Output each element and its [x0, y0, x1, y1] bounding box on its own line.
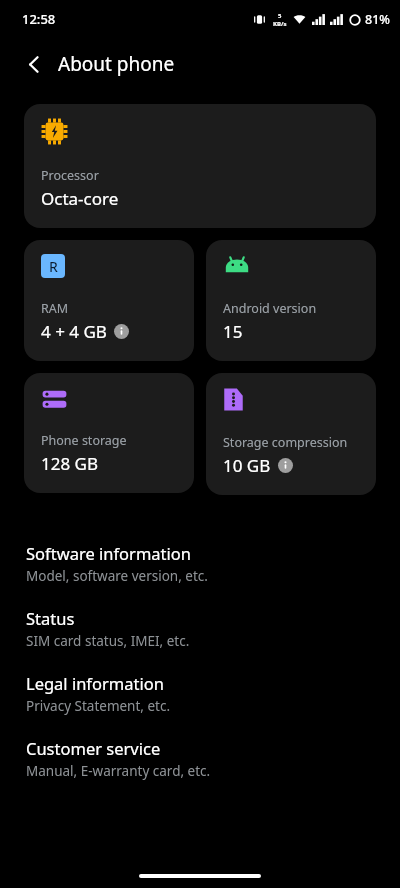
staticText: Octa-core — [41, 187, 119, 210]
staticText: 128 GB — [41, 452, 99, 475]
staticText: Manual, E-warranty card, etc. — [26, 762, 211, 780]
staticText: R — [49, 257, 58, 276]
staticText: 81% — [365, 11, 390, 28]
staticText: RAM — [41, 300, 69, 317]
staticText: About phone — [58, 51, 175, 77]
staticText: 5 — [278, 12, 282, 20]
staticText: Software information — [26, 542, 191, 564]
staticText: 4 + 4 GB — [41, 320, 107, 343]
button[interactable]: Phone storage — [24, 373, 194, 493]
button[interactable]: Status — [0, 596, 400, 661]
button[interactable]: Customer service — [0, 726, 400, 791]
staticText: KB/s — [273, 20, 287, 28]
staticText: Processor — [41, 167, 99, 184]
staticText: Customer service — [26, 737, 161, 759]
button[interactable]: R — [24, 240, 194, 361]
button[interactable]: Processor — [24, 104, 376, 228]
staticText: 12:58 — [22, 10, 56, 28]
button[interactable]: Android version — [206, 240, 376, 361]
staticText: Phone storage — [41, 432, 127, 449]
button[interactable]: Storage compression — [206, 373, 376, 495]
button[interactable]: Legal information — [0, 661, 400, 726]
button[interactable]: Back — [14, 44, 54, 84]
staticText: Privacy Statement, etc. — [26, 697, 171, 715]
staticText: SIM card status, IMEI, etc. — [26, 632, 190, 650]
staticText: 15 — [223, 320, 243, 343]
staticText: Legal information — [26, 672, 164, 694]
staticText: Status — [26, 607, 75, 629]
button[interactable]: Software information — [0, 531, 400, 596]
staticText: Android version — [223, 300, 317, 317]
staticText: Storage compression — [223, 434, 348, 451]
staticText: 10 GB — [223, 454, 271, 477]
staticText: Model, software version, etc. — [26, 567, 208, 585]
